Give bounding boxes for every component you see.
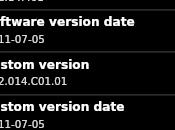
button[interactable]: Custom version date (0, 94, 175, 130)
staticText: Software version date (0, 15, 135, 29)
staticText: Custom version date (0, 100, 125, 114)
staticText: 2.14.401 (0, 0, 44, 3)
button[interactable]: Software version date (0, 9, 175, 52)
button[interactable]: Custom version (0, 51, 175, 94)
staticText: 11-07-05 (0, 33, 45, 45)
staticText: Custom version (0, 58, 90, 72)
staticText: 11-07-05 (0, 118, 45, 130)
staticText: 2.014.C01.01 (0, 75, 68, 87)
button[interactable]: Software version (0, 0, 175, 9)
